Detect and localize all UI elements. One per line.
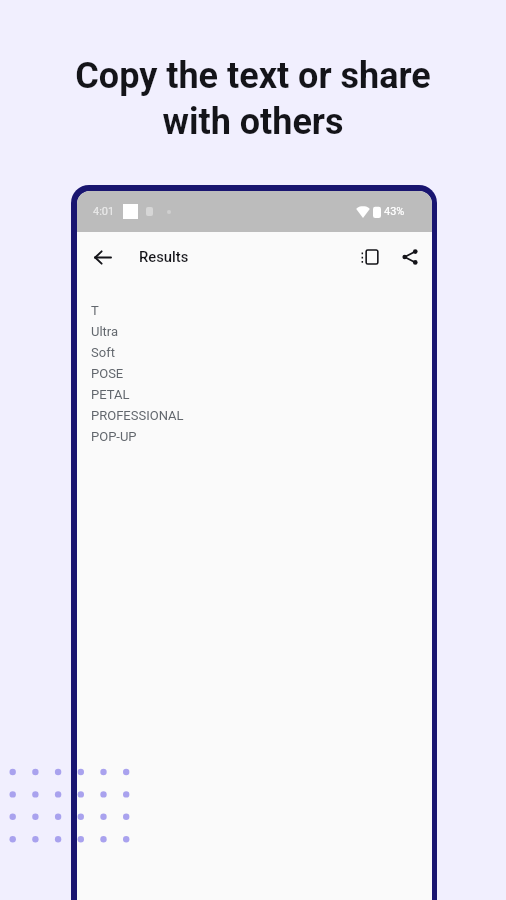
staticText: PROFESSIONAL <box>91 408 184 423</box>
button[interactable]: Share <box>390 237 430 277</box>
staticText: POSE <box>91 366 124 381</box>
button[interactable]: Copy <box>350 237 390 277</box>
button[interactable]: Back <box>82 237 122 277</box>
staticText: POP-UP <box>91 429 137 444</box>
staticText: Results <box>139 248 189 265</box>
staticText: Ultra <box>91 324 119 339</box>
staticText: T <box>91 303 99 318</box>
staticText: Copy the text or share with others <box>0 55 506 143</box>
staticText: 4:01 <box>93 205 115 218</box>
staticText: PETAL <box>91 387 130 402</box>
staticText: 43% <box>384 205 405 218</box>
staticText: Soft <box>91 345 115 360</box>
